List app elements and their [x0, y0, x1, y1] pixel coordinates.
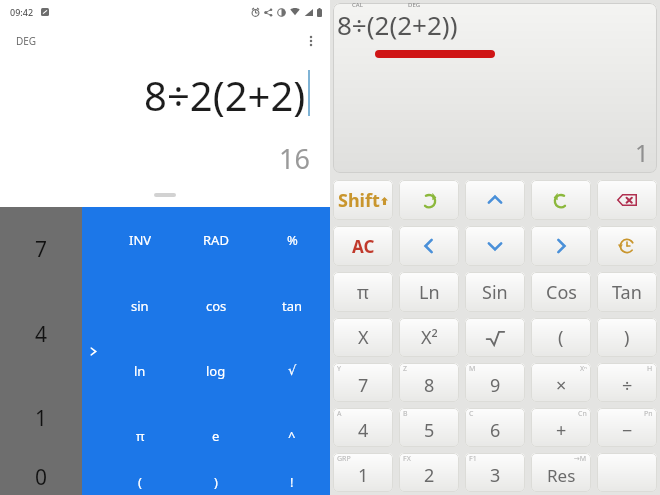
staticText: FX	[403, 454, 411, 464]
button[interactable]: Sin	[465, 272, 525, 312]
button[interactable]: e	[178, 403, 254, 468]
button[interactable]: sin	[102, 273, 178, 338]
staticText: H	[647, 364, 653, 374]
staticText: Pn	[644, 409, 653, 419]
button[interactable]: X²	[399, 318, 459, 357]
button[interactable]: π	[102, 403, 178, 468]
staticText: !	[290, 473, 294, 491]
staticText: sin	[131, 297, 149, 315]
button[interactable]: History	[597, 226, 657, 266]
button[interactable]: 1	[0, 376, 82, 460]
staticText: Xⁿ	[580, 364, 587, 374]
staticText: −	[622, 418, 633, 443]
button[interactable]: Expand	[84, 342, 102, 360]
staticText: →M	[574, 454, 587, 464]
button[interactable]: M	[465, 363, 525, 402]
staticText: 16	[279, 140, 310, 177]
button[interactable]: )	[597, 318, 657, 357]
button[interactable]: ^	[254, 403, 330, 468]
staticText: GRP	[337, 454, 351, 464]
button[interactable]: Ln	[399, 272, 459, 312]
staticText: M	[469, 364, 476, 374]
button[interactable]: Tan	[597, 272, 657, 312]
staticText: 8÷(2(2+2))	[337, 7, 458, 42]
staticText: 1	[635, 136, 649, 169]
button[interactable]: Delete	[597, 180, 657, 220]
staticText: INV	[129, 231, 152, 249]
button[interactable]: X	[333, 318, 393, 357]
staticText: log	[206, 362, 226, 380]
button[interactable]: !	[254, 468, 330, 495]
staticText: 6	[490, 418, 501, 443]
staticText: Cn	[578, 409, 587, 419]
staticText: Cos	[546, 280, 577, 305]
button[interactable]: Pn	[597, 408, 657, 447]
button[interactable]: Right	[531, 226, 591, 266]
button[interactable]: Z	[399, 363, 459, 402]
button[interactable]: AC	[333, 226, 393, 266]
button[interactable]: cos	[178, 273, 254, 338]
staticText: 8	[424, 373, 435, 398]
button[interactable]: H	[597, 363, 657, 402]
button[interactable]: π	[333, 272, 393, 312]
button[interactable]: Left	[399, 226, 459, 266]
button[interactable]: RAD	[178, 207, 254, 273]
staticText: cos	[206, 297, 227, 315]
button[interactable]: Undo	[531, 180, 591, 220]
button[interactable]: Cn	[531, 408, 591, 447]
staticText: X	[358, 325, 369, 350]
staticText: 2	[424, 463, 435, 488]
button[interactable]: Xⁿ	[531, 363, 591, 402]
button[interactable]	[597, 453, 657, 492]
button[interactable]: →M	[531, 453, 591, 492]
staticText: 7	[35, 235, 48, 264]
staticText: F1	[469, 454, 477, 464]
staticText: Y	[337, 364, 341, 374]
button[interactable]: tan	[254, 273, 330, 338]
staticText: ÷	[622, 373, 633, 398]
button[interactable]: ln	[102, 338, 178, 403]
staticText: 1	[358, 463, 369, 488]
staticText: tan	[282, 297, 303, 315]
button[interactable]: %	[254, 207, 330, 273]
button[interactable]: More options	[298, 28, 324, 54]
button[interactable]: Square root	[465, 318, 525, 357]
button[interactable]: 4	[0, 292, 82, 376]
staticText: Shift	[338, 188, 380, 213]
staticText: C	[469, 409, 474, 419]
staticText: π	[136, 427, 145, 445]
button[interactable]: Cos	[531, 272, 591, 312]
button[interactable]: 0	[0, 460, 82, 495]
button[interactable]: 7	[0, 207, 82, 292]
staticText: (	[138, 473, 142, 491]
staticText: )	[214, 473, 218, 491]
button[interactable]: log	[178, 338, 254, 403]
button[interactable]: F1	[465, 453, 525, 492]
button[interactable]: C	[465, 408, 525, 447]
button[interactable]: FX	[399, 453, 459, 492]
staticText: Tan	[612, 280, 642, 305]
staticText: +	[556, 418, 567, 443]
button[interactable]: B	[399, 408, 459, 447]
staticText: 4	[35, 320, 48, 349]
staticText: 9	[490, 373, 501, 398]
staticText: AC	[352, 235, 375, 258]
staticText: ln	[134, 362, 146, 380]
button[interactable]: (	[531, 318, 591, 357]
staticText: π	[357, 280, 369, 305]
button[interactable]: (	[102, 468, 178, 495]
button[interactable]: Shift	[333, 180, 393, 220]
staticText: 09:42	[10, 6, 34, 18]
button[interactable]: )	[178, 468, 254, 495]
button[interactable]: Up	[465, 180, 525, 220]
staticText: 1	[35, 404, 48, 433]
button[interactable]: Y	[333, 363, 393, 402]
staticText: Ln	[419, 280, 440, 305]
button[interactable]: INV	[102, 207, 178, 273]
button[interactable]: √	[254, 338, 330, 403]
button[interactable]: A	[333, 408, 393, 447]
button[interactable]: Down	[465, 226, 525, 266]
button[interactable]: Redo	[399, 180, 459, 220]
staticText: 0	[35, 463, 48, 492]
button[interactable]: GRP	[333, 453, 393, 492]
